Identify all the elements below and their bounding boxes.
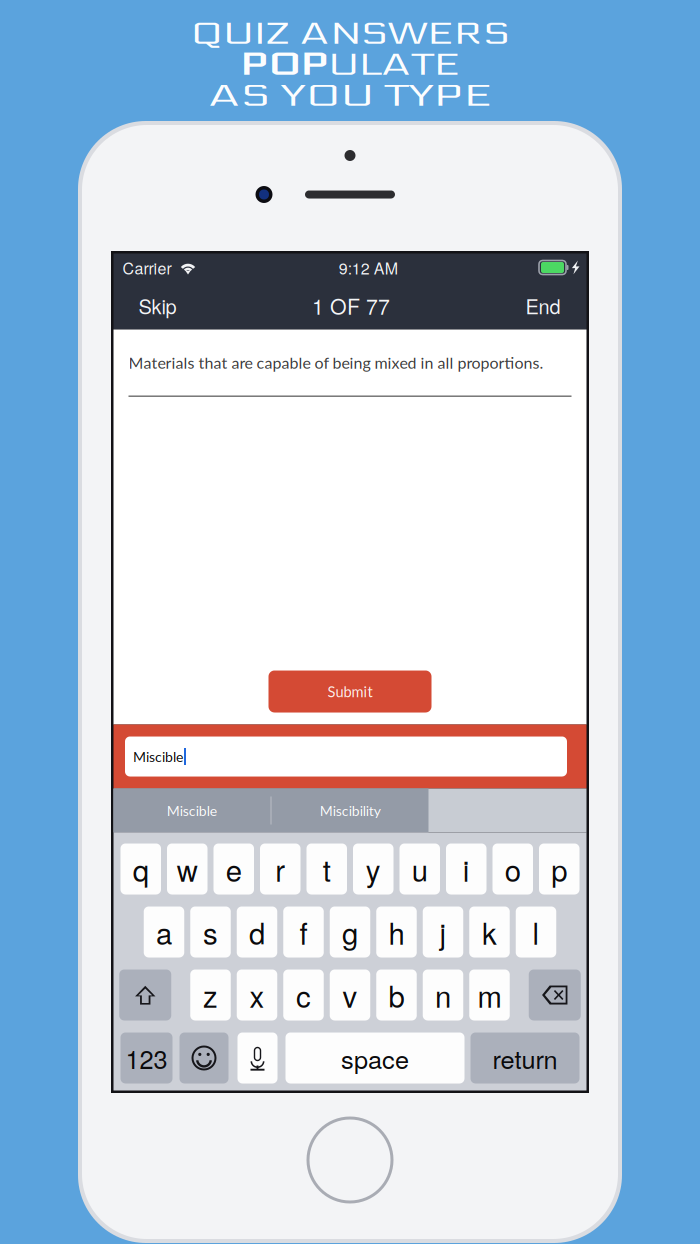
button[interactable]: Skip (113, 281, 198, 329)
staticText: return (492, 1040, 557, 1076)
staticText: Miscible (167, 802, 217, 819)
button[interactable]: e (213, 843, 254, 894)
button[interactable]: p (539, 843, 579, 894)
button[interactable]: 123 (120, 1032, 172, 1083)
button[interactable]: End (503, 281, 586, 329)
button[interactable]: k (469, 906, 510, 957)
staticText: r (275, 848, 285, 890)
staticText: ULATE (335, 48, 425, 83)
button[interactable]: b (376, 969, 417, 1020)
staticText: z (203, 974, 218, 1016)
button[interactable]: x (237, 969, 277, 1020)
button[interactable]: d (237, 906, 277, 957)
staticText: x (249, 974, 264, 1016)
button[interactable]: Submit (268, 670, 431, 712)
staticText: e (226, 848, 242, 890)
button[interactable]: l (516, 906, 556, 957)
staticText: space (341, 1040, 409, 1076)
button[interactable]: y (353, 843, 393, 894)
staticText: 123 (125, 1040, 167, 1076)
button[interactable]: f (283, 906, 324, 957)
button[interactable]: h (376, 906, 417, 957)
button[interactable]: n (423, 969, 463, 1020)
staticText: c (296, 974, 311, 1016)
staticText: y (366, 848, 381, 890)
staticText: s (203, 911, 218, 953)
staticText: p (551, 848, 567, 890)
staticText: AS YOU TYPE (260, 79, 440, 114)
staticText: a (156, 911, 172, 953)
staticText: d (249, 911, 265, 953)
button[interactable]: r (260, 843, 300, 894)
button[interactable]: j (423, 906, 463, 957)
button[interactable]: c (283, 969, 324, 1020)
staticText: Miscibility (320, 802, 381, 819)
staticText: m (477, 974, 501, 1016)
staticText: k (482, 911, 497, 953)
button[interactable]: g (330, 906, 370, 957)
button[interactable]: Shift (119, 969, 171, 1020)
staticText: Materials that are capable of being mixe… (128, 353, 543, 372)
button[interactable]: q (120, 843, 161, 894)
staticText: w (177, 848, 198, 890)
button[interactable]: u (399, 843, 440, 894)
staticText: QUIZ ANSWERS (241, 17, 458, 52)
button[interactable]: z (190, 969, 231, 1020)
staticText: POP (275, 48, 335, 83)
button[interactable]: Miscible (113, 788, 270, 832)
staticText: Carrier (122, 256, 171, 279)
staticText: t (323, 848, 331, 890)
button[interactable]: Miscibility (272, 788, 429, 832)
staticText: 1 OF 77 (312, 290, 390, 321)
staticText: 9:12 AM (339, 256, 398, 279)
button[interactable]: v (330, 969, 370, 1020)
staticText: v (342, 974, 357, 1016)
staticText: l (532, 911, 539, 953)
button[interactable]: s (190, 906, 231, 957)
staticText: u (412, 848, 428, 890)
staticText: f (299, 911, 307, 953)
button[interactable]: space (285, 1032, 464, 1083)
staticText: i (463, 848, 470, 890)
staticText: q (133, 848, 149, 890)
button[interactable]: i (446, 843, 486, 894)
button[interactable]: t (306, 843, 347, 894)
staticText: End (525, 291, 560, 320)
button[interactable]: w (167, 843, 207, 894)
staticText: n (435, 974, 451, 1016)
button[interactable]: Delete (529, 969, 581, 1020)
button[interactable]: m (469, 969, 510, 1020)
staticText: Miscible (133, 748, 183, 765)
staticText: Skip (138, 291, 176, 320)
staticText: g (342, 911, 358, 953)
button[interactable]: Dictation (237, 1032, 277, 1083)
button[interactable]: return (470, 1032, 579, 1083)
button[interactable]: o (492, 843, 533, 894)
staticText: o (505, 848, 521, 890)
button[interactable]: Emoji (179, 1032, 228, 1083)
staticText: b (388, 974, 404, 1016)
staticText: h (388, 911, 404, 953)
staticText: j (439, 911, 446, 953)
staticText: Submit (327, 683, 372, 700)
button[interactable]: a (144, 906, 184, 957)
